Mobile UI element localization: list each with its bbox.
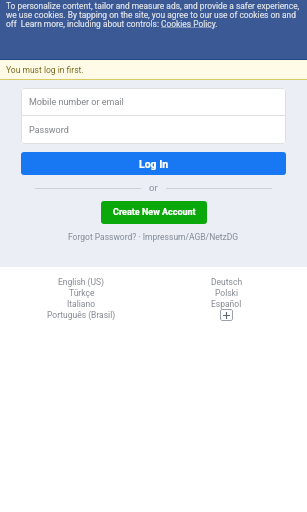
button[interactable]: English (US) [58,276,105,287]
button[interactable]: Italiano [67,298,96,309]
staticText: Deutsch [211,277,243,287]
staticText: Polski [215,288,238,298]
staticText: Password [29,125,69,136]
staticText: Português (Brasil) [47,310,116,320]
staticText: Create New Account [113,207,196,218]
button[interactable]: Create New Account [101,201,207,224]
button[interactable]: Mobile number or email [21,88,286,115]
button[interactable]: Log In [21,152,286,175]
button[interactable]: Show more languages [220,309,233,321]
button[interactable]: Türkçe [69,287,95,298]
staticText: Mobile number or email [29,97,124,108]
button[interactable]: Polski [215,287,238,298]
button[interactable]: Forgot Password? · Impressum/AGB/NetzDG [68,232,239,242]
staticText: Español [211,299,242,309]
button[interactable]: Password [21,116,286,143]
staticText: English (US) [58,277,105,287]
button[interactable]: Español [211,298,242,309]
staticText: Italiano [67,299,96,309]
staticText: To personalize content, tailor and measu… [6,1,302,29]
button[interactable]: Deutsch [211,276,243,287]
staticText: or [149,182,158,193]
staticText: Türkçe [69,288,95,298]
staticText: Log In [139,158,169,170]
button[interactable]: To personalize content, tailor and measu… [0,0,307,60]
button[interactable]: Português (Brasil) [47,309,116,320]
staticText: You must log in first. [6,65,84,75]
